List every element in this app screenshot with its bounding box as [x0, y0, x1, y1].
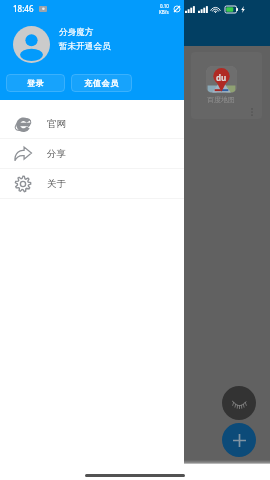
staticText: 暂未开通会员: [59, 41, 111, 52]
staticText: 关于: [47, 178, 66, 190]
button[interactable]: 分享: [0, 139, 184, 168]
button[interactable]: du: [191, 52, 262, 119]
staticText: 18:46: [13, 3, 34, 14]
staticText: 充值会员: [84, 78, 120, 88]
staticText: 官网: [47, 118, 66, 130]
button[interactable]: 登录: [6, 74, 65, 92]
staticText: 0.10: [160, 3, 169, 9]
staticText: 分享: [47, 148, 66, 160]
staticText: du: [216, 72, 227, 83]
staticText: 百度地图: [207, 95, 235, 104]
staticText: KB/s: [159, 9, 169, 15]
button[interactable]: 充值会员: [71, 74, 132, 92]
button[interactable]: Account avatar: [13, 26, 50, 63]
button[interactable]: 关于: [0, 169, 184, 198]
staticText: 分身魔方: [59, 27, 94, 38]
staticText: 登录: [27, 78, 45, 88]
button[interactable]: Hide apps: [222, 386, 256, 420]
button[interactable]: Add app: [222, 423, 256, 457]
button[interactable]: 官网: [0, 109, 184, 138]
